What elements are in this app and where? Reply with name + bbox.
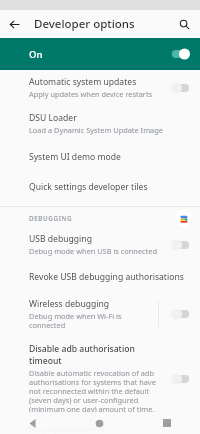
- staticText: Revoke USB debugging authorisations: [29, 271, 184, 283]
- staticText: System UI demo mode: [29, 151, 121, 163]
- button[interactable]: Revoke USB debugging authorisations: [0, 262, 200, 292]
- staticText: DSU Loader: [29, 112, 77, 124]
- staticText: Load a Dynamic System Update Image: [29, 125, 163, 135]
- staticText: Disable adb authorisation timeout: [29, 343, 167, 367]
- button[interactable]: DSU Loader: [0, 105, 200, 142]
- staticText: DEBUGGING: [29, 214, 73, 223]
- staticText: Developer options: [34, 16, 135, 32]
- button[interactable]: Automatic system updates: [0, 70, 200, 105]
- button[interactable]: Floating bubble: [175, 210, 192, 227]
- staticText: On: [29, 48, 170, 61]
- button[interactable]: Back: [0, 412, 66, 434]
- staticText: Wireless debugging: [29, 298, 110, 310]
- button[interactable]: Bug report shortcut: [0, 421, 200, 434]
- button[interactable]: Home: [66, 412, 133, 434]
- staticText: USB debugging: [29, 233, 92, 245]
- staticText: Bug report shortcut: [29, 424, 107, 434]
- button[interactable]: Off: [171, 82, 191, 94]
- button[interactable]: System UI demo mode: [0, 142, 200, 172]
- staticText: Debug mode when USB is connected: [29, 246, 158, 256]
- button[interactable]: Off: [171, 239, 191, 251]
- staticText: Automatic system updates: [29, 76, 137, 88]
- button[interactable]: On: [0, 38, 200, 70]
- staticText: Apply updates when device restarts: [29, 89, 153, 99]
- button[interactable]: Back: [5, 15, 24, 34]
- button[interactable]: Off: [171, 373, 191, 385]
- button[interactable]: Disable adb authorisation timeout: [0, 337, 200, 420]
- staticText: Debug mode when Wi-Fi is connected: [29, 311, 122, 330]
- button[interactable]: On: [170, 48, 190, 60]
- staticText: Disable automatic revocation of adb auth…: [29, 368, 156, 414]
- button[interactable]: Wireless debugging: [0, 292, 200, 337]
- button[interactable]: Off: [171, 308, 191, 320]
- button[interactable]: Search: [175, 15, 194, 34]
- button[interactable]: Recent apps: [133, 412, 200, 434]
- button[interactable]: USB debugging: [0, 229, 200, 262]
- button[interactable]: Quick settings developer tiles: [0, 172, 200, 202]
- staticText: Quick settings developer tiles: [29, 181, 148, 193]
